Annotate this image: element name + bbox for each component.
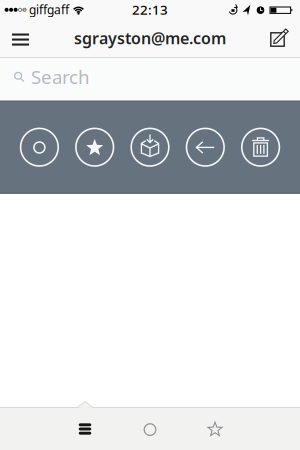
button[interactable]: Delete [241, 128, 280, 167]
staticText: 22:13 [132, 1, 168, 18]
button[interactable]: Mark unread [20, 128, 59, 167]
staticText: giffgaff [29, 1, 69, 17]
button[interactable]: Menu [0, 19, 37, 57]
button[interactable]: Starred [185, 408, 245, 450]
staticText: Search [31, 64, 90, 89]
button[interactable]: Back [186, 128, 225, 167]
button[interactable]: Inbox [55, 408, 115, 450]
button[interactable]: Compose [262, 19, 300, 57]
staticText: sgrayston@me.com [74, 27, 226, 49]
button[interactable]: Search [0, 58, 300, 101]
button[interactable]: Archive [130, 128, 169, 167]
button[interactable]: Unread [120, 408, 180, 450]
button[interactable]: Star [75, 128, 114, 167]
